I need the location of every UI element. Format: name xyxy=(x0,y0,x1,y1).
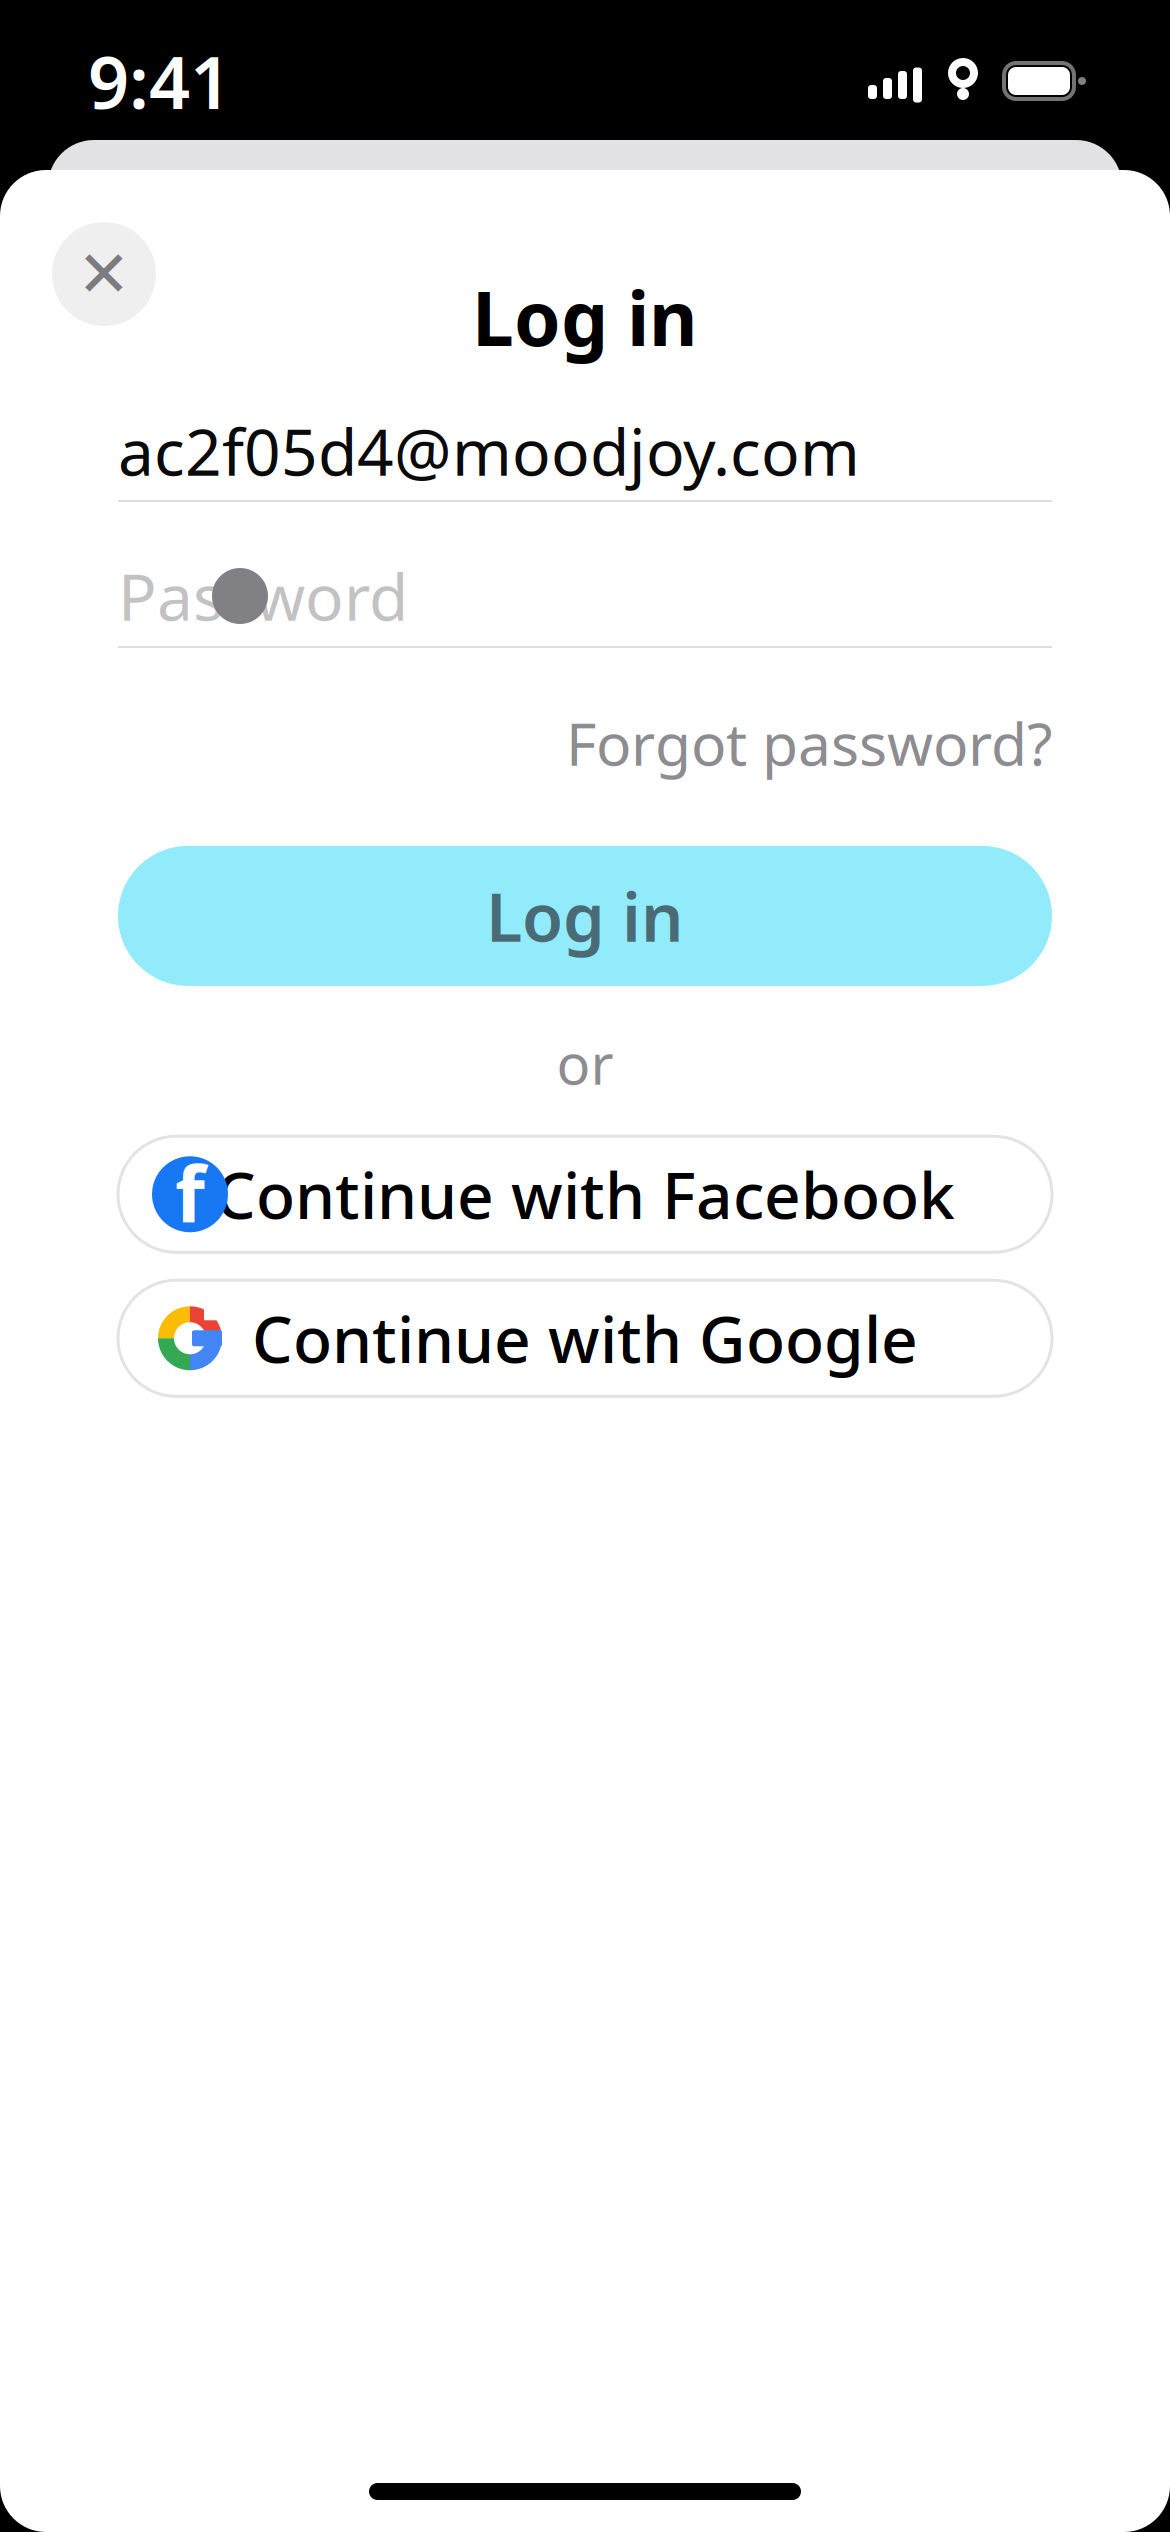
staticText: Log in xyxy=(472,267,698,367)
staticText: Log in xyxy=(486,872,684,960)
button[interactable]: Forgot password? xyxy=(566,692,1052,794)
staticText: Continue with Facebook xyxy=(215,1152,955,1237)
staticText: Continue with Google xyxy=(252,1296,918,1381)
button[interactable]: Continue with Google xyxy=(118,1280,1052,1396)
staticText: ✕ xyxy=(77,238,131,310)
button[interactable]: Log in xyxy=(118,846,1052,986)
staticText: f xyxy=(175,1141,205,1244)
staticText: Password xyxy=(118,553,408,638)
button[interactable]: Continue with Facebook xyxy=(118,1136,1052,1252)
staticText: 9:41 xyxy=(88,33,231,129)
staticText: or xyxy=(556,1026,613,1100)
staticText: Forgot password? xyxy=(566,704,1052,782)
button[interactable]: Close xyxy=(52,222,156,326)
staticText: ac2f05d4@moodjoy.com xyxy=(118,408,860,493)
